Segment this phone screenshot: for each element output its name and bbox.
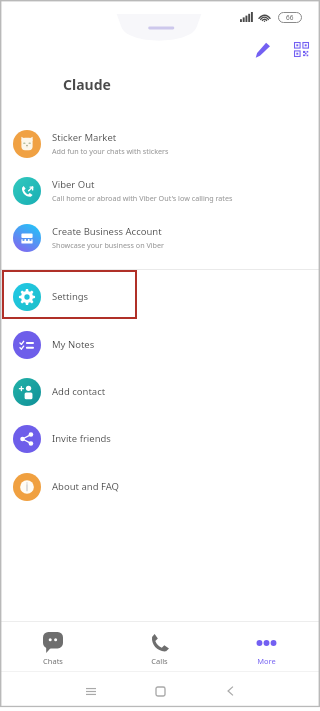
staticText: 66 [286, 13, 294, 22]
staticText: Chats [43, 656, 63, 666]
staticText: More [257, 656, 276, 666]
staticText: Add contact [52, 385, 106, 398]
staticText: Viber Out [52, 178, 95, 191]
staticText: About and FAQ [52, 480, 119, 493]
button[interactable]: More [213, 622, 320, 671]
button[interactable]: Recents [77, 677, 105, 705]
staticText: Showcase your business on Viber [52, 240, 165, 250]
button[interactable]: Chats [0, 622, 106, 671]
button[interactable]: Home [146, 677, 174, 705]
button[interactable]: Settings [0, 273, 320, 320]
button[interactable]: About and FAQ [0, 463, 320, 510]
button[interactable]: Calls [106, 622, 213, 671]
button[interactable]: Scan QR code [291, 39, 311, 59]
staticText: Create Business Account [52, 225, 162, 238]
staticText: Settings [52, 290, 89, 303]
staticText: Calls [151, 656, 168, 666]
staticText: Sticker Market [52, 131, 117, 144]
button[interactable]: Viber Out [0, 167, 320, 214]
staticText: Call home or abroad with Viber Out's low… [52, 193, 233, 203]
staticText: Invite friends [52, 432, 111, 445]
button[interactable]: Create Business Account [0, 214, 320, 261]
staticText: Claude [63, 75, 111, 94]
button[interactable]: Edit [251, 39, 273, 61]
staticText: Add fun to your chats with stickers [52, 146, 169, 156]
button[interactable]: My Notes [0, 321, 320, 368]
button[interactable]: Sticker Market [0, 120, 320, 167]
button[interactable]: Add contact [0, 368, 320, 415]
button[interactable]: Invite friends [0, 415, 320, 462]
staticText: My Notes [52, 338, 95, 351]
button[interactable]: Back [216, 677, 244, 705]
